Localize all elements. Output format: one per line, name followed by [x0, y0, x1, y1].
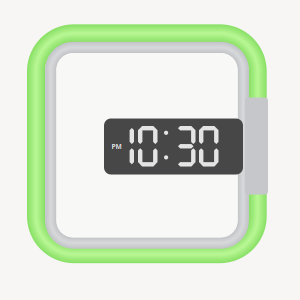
staticText: PM [111, 142, 121, 151]
